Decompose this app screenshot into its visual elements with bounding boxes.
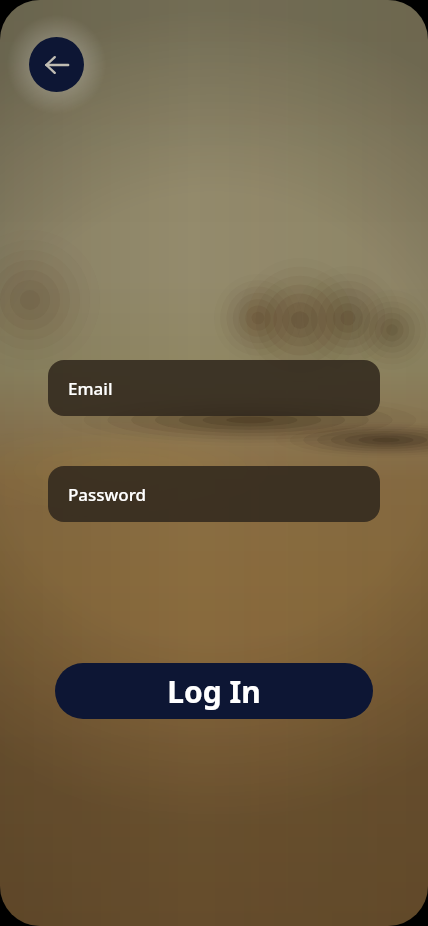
staticText: Log In xyxy=(167,671,261,712)
staticText: Password xyxy=(68,483,147,506)
button[interactable]: Back xyxy=(29,37,84,92)
button[interactable]: Password xyxy=(48,466,380,522)
button[interactable]: Email xyxy=(48,360,380,416)
button[interactable]: Log In xyxy=(55,663,373,719)
staticText: Email xyxy=(68,377,113,400)
